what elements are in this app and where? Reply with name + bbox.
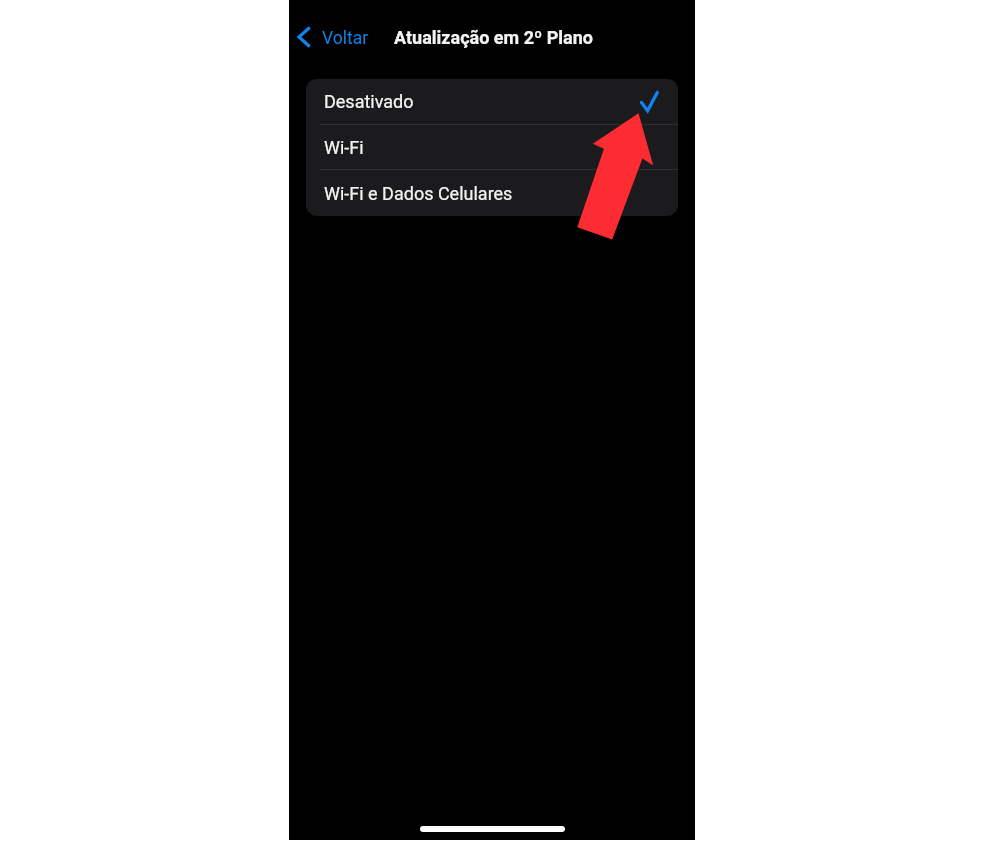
- staticText: Desativado: [324, 91, 414, 112]
- button[interactable]: Wi-Fi e Dados Celulares: [306, 170, 678, 216]
- button[interactable]: Wi-Fi: [306, 125, 678, 169]
- button[interactable]: Desativado: [306, 79, 678, 124]
- other: Selected: [638, 87, 664, 117]
- staticText: Atualização em 2º Plano: [394, 27, 593, 48]
- other: Back: [298, 27, 310, 47]
- staticText: Wi-Fi: [324, 137, 364, 158]
- button[interactable]: Back: [292, 18, 375, 55]
- staticText: Voltar: [322, 28, 369, 49]
- staticText: Wi-Fi e Dados Celulares: [324, 183, 513, 204]
